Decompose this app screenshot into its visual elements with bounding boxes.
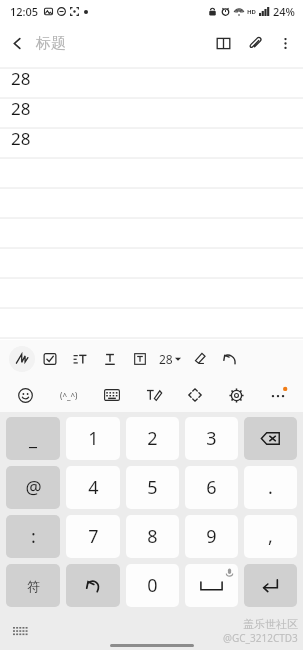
button[interactable]: @ <box>6 466 60 509</box>
button[interactable]: 0 <box>126 564 179 607</box>
button[interactable]: : <box>6 515 60 558</box>
staticText: 8 <box>147 524 158 549</box>
button[interactable]: 3 <box>185 417 238 460</box>
staticText: 28 <box>11 67 31 90</box>
button[interactable]: Checklist <box>35 344 65 374</box>
staticText: 盖乐世社区 <box>243 617 298 631</box>
button[interactable]: Reading mode <box>207 27 239 59</box>
staticText: 5 <box>147 475 158 500</box>
staticText: @GC_3212CTD3 <box>223 631 298 645</box>
staticText: 2 <box>147 426 158 451</box>
button[interactable]: Pen <box>9 346 35 372</box>
staticText: 9 <box>206 524 217 549</box>
button[interactable]: Move keyboard <box>179 379 211 411</box>
staticText: 24% <box>273 4 295 19</box>
button[interactable]: Back <box>0 26 34 60</box>
staticText: . <box>268 475 273 500</box>
button[interactable]: Undo <box>66 564 120 607</box>
button[interactable]: 5 <box>126 466 179 509</box>
staticText: @ <box>25 475 42 500</box>
button[interactable]: Emoji <box>9 379 41 411</box>
button[interactable]: 4 <box>66 466 120 509</box>
button[interactable]: 8 <box>126 515 179 558</box>
button[interactable]: . <box>244 466 297 509</box>
staticText: 12:05 <box>10 4 39 19</box>
button[interactable]: Attach <box>239 27 271 59</box>
button[interactable]: Enter <box>244 564 297 607</box>
button[interactable]: 2 <box>126 417 179 460</box>
button[interactable]: Kaomoji <box>51 378 87 412</box>
staticText: 28 <box>159 351 173 367</box>
staticText: 4 <box>88 475 99 500</box>
button[interactable]: _ <box>6 417 60 460</box>
button[interactable]: 6 <box>185 466 238 509</box>
staticText: 6 <box>206 475 217 500</box>
staticText: , <box>268 524 273 549</box>
staticText: _ <box>29 426 37 451</box>
staticText: 1 <box>88 426 99 451</box>
staticText: 28 <box>11 97 31 120</box>
button[interactable]: 9 <box>185 515 238 558</box>
staticText: : <box>31 524 36 549</box>
button[interactable]: Highlight <box>185 344 215 374</box>
staticText: 0 <box>147 573 158 598</box>
button[interactable]: Undo <box>215 344 245 374</box>
staticText: 符 <box>27 578 40 594</box>
button[interactable]: Text style <box>95 344 125 374</box>
button[interactable]: 符 <box>6 564 60 607</box>
button[interactable]: Space <box>185 564 238 607</box>
button[interactable]: Delete <box>244 417 297 460</box>
staticText: 28 <box>11 127 31 150</box>
button[interactable]: , <box>244 515 297 558</box>
staticText: 7 <box>88 524 99 549</box>
staticText: 标题 <box>36 34 66 53</box>
button[interactable]: More <box>262 379 294 411</box>
button[interactable]: Text box <box>125 344 155 374</box>
button[interactable]: Keyboard <box>96 379 128 411</box>
button[interactable]: More options <box>271 29 299 57</box>
staticText: (^_^) <box>60 390 78 401</box>
button[interactable]: Handwriting <box>138 379 170 411</box>
button[interactable]: Hide keyboard <box>8 619 32 643</box>
button[interactable]: 1 <box>66 417 120 460</box>
staticText: HD <box>247 8 256 16</box>
button[interactable]: Settings <box>220 379 252 411</box>
button[interactable]: Paragraph <box>65 344 95 374</box>
staticText: 3 <box>206 426 217 451</box>
button[interactable]: 7 <box>66 515 120 558</box>
button[interactable]: 28 <box>155 340 185 378</box>
